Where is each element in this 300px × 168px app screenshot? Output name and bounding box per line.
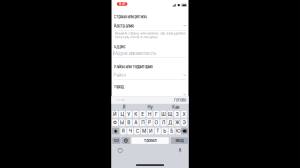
- staticText: Ну: [147, 105, 152, 110]
- button[interactable]: У: [126, 111, 132, 117]
- button[interactable]: Ч: [127, 128, 133, 134]
- staticText: Ц: [120, 111, 123, 117]
- staticText: Х: [182, 111, 185, 117]
- button[interactable]: Готово: [111, 96, 186, 104]
- button[interactable]: Й: [112, 111, 118, 117]
- staticText: Ж: [175, 120, 179, 125]
- button[interactable]: Е: [140, 111, 146, 117]
- button[interactable]: Д: [167, 119, 173, 126]
- staticText: Э: [182, 120, 185, 125]
- button[interactable]: Л: [160, 119, 166, 126]
- staticText: Как: [172, 105, 179, 110]
- button[interactable]: Next field: [121, 99, 124, 101]
- button[interactable]: Ф: [112, 119, 118, 126]
- staticText: Е: [141, 111, 144, 117]
- staticText: Готово: [174, 98, 186, 102]
- staticText: Я: [122, 128, 125, 134]
- button[interactable]: Next keyboard: [122, 137, 130, 144]
- button[interactable]: Я: [111, 104, 137, 111]
- button[interactable]: Ввод: [171, 137, 188, 144]
- button[interactable]: Emoji: [118, 148, 122, 153]
- staticText: Адрес: [113, 44, 125, 49]
- staticText: Т: [156, 128, 159, 134]
- button[interactable]: 123: [112, 137, 120, 144]
- staticText: Щ: [168, 111, 173, 117]
- button[interactable]: Н: [147, 111, 152, 117]
- staticText: А: [134, 120, 137, 125]
- staticText: Б: [170, 128, 173, 134]
- staticText: Д: [168, 120, 172, 125]
- staticText: Введите страну или регион, где вам удобн…: [114, 32, 185, 39]
- button[interactable]: Э: [181, 119, 187, 126]
- staticText: Ю: [176, 128, 181, 134]
- staticText: В: [127, 120, 130, 125]
- button[interactable]: Х: [181, 111, 187, 117]
- staticText: Ф: [113, 120, 117, 125]
- button[interactable]: Delete: [181, 128, 188, 134]
- button[interactable]: К: [133, 111, 139, 117]
- button[interactable]: Как: [163, 104, 188, 111]
- staticText: Район или территория: [113, 64, 152, 69]
- button[interactable]: Пробел: [131, 137, 169, 144]
- staticText: Ы: [120, 120, 124, 125]
- staticText: Ввод: [175, 138, 183, 143]
- staticText: Р: [148, 120, 151, 125]
- button[interactable]: Адрес или местность: [113, 50, 186, 58]
- button[interactable]: П: [140, 119, 146, 126]
- button[interactable]: Б: [169, 128, 175, 134]
- staticText: Район: [113, 73, 125, 78]
- button[interactable]: Ы: [119, 119, 125, 126]
- staticText: Адрес или местность: [115, 51, 156, 56]
- button[interactable]: В: [126, 119, 132, 126]
- staticText: М: [142, 128, 146, 134]
- button[interactable]: [113, 92, 186, 99]
- staticText: З: [176, 111, 179, 117]
- staticText: О: [154, 120, 158, 125]
- button[interactable]: Австралия: [113, 23, 186, 30]
- staticText: Австралия: [113, 23, 133, 28]
- staticText: Я: [123, 105, 126, 110]
- button[interactable]: Р: [147, 119, 152, 126]
- button[interactable]: Ю: [176, 128, 181, 134]
- button[interactable]: Ж: [174, 119, 180, 126]
- staticText: 123: [114, 138, 119, 143]
- button[interactable]: Ь: [162, 128, 168, 134]
- staticText: Ь: [163, 128, 166, 134]
- staticText: С: [136, 128, 139, 134]
- staticText: Л: [162, 120, 165, 125]
- button[interactable]: Район: [113, 72, 186, 80]
- button[interactable]: А: [133, 119, 139, 126]
- button[interactable]: Ц: [119, 111, 125, 117]
- staticText: Страна или регион: [113, 14, 146, 19]
- button[interactable]: Я: [120, 128, 126, 134]
- button[interactable]: З: [174, 111, 180, 117]
- button[interactable]: О: [153, 119, 159, 126]
- button[interactable]: Т: [155, 128, 161, 134]
- staticText: Й: [113, 111, 117, 117]
- staticText: У: [127, 111, 130, 117]
- button[interactable]: Dictation: [178, 148, 182, 153]
- staticText: Г: [155, 111, 158, 117]
- staticText: Ч: [129, 128, 132, 134]
- staticText: И: [149, 128, 153, 134]
- button[interactable]: С: [134, 128, 140, 134]
- staticText: 9:41: [119, 2, 125, 6]
- staticText: Город: [113, 84, 124, 89]
- button[interactable]: Ш: [160, 111, 166, 117]
- button[interactable]: М: [141, 128, 147, 134]
- button[interactable]: Г: [153, 111, 159, 117]
- button[interactable]: И: [148, 128, 154, 134]
- button[interactable]: Previous field: [116, 99, 120, 101]
- staticText: Пробел: [144, 138, 157, 143]
- staticText: П: [141, 120, 144, 125]
- staticText: Н: [148, 111, 151, 117]
- staticText: Ш: [161, 111, 165, 117]
- staticText: К: [134, 111, 137, 117]
- button[interactable]: Ну: [137, 104, 163, 111]
- button[interactable]: Щ: [167, 111, 173, 117]
- button[interactable]: Shift: [112, 128, 119, 134]
